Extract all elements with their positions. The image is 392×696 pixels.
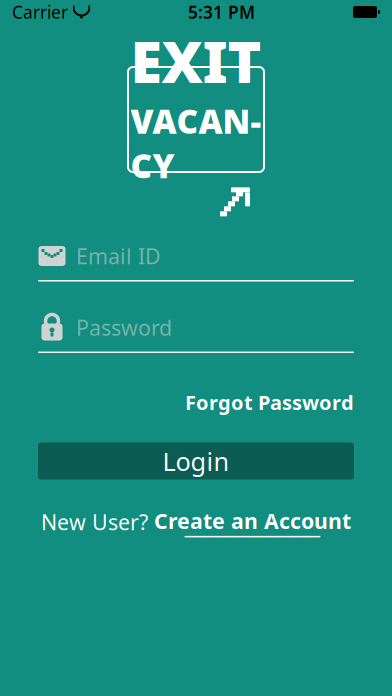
staticText: Forgot Password (185, 389, 354, 416)
staticText: EXIT (130, 23, 261, 99)
button[interactable]: New User? (41, 507, 351, 537)
staticText: 5:31 PM (188, 0, 255, 23)
button[interactable]: Login (38, 443, 354, 480)
button[interactable]: Forgot Password (185, 389, 354, 416)
staticText: Carrier (12, 0, 68, 23)
staticText: Login (162, 444, 229, 478)
staticText: VACANCY (130, 99, 261, 187)
staticText: Create an Account (154, 507, 351, 535)
staticText: New User? (41, 508, 148, 536)
staticText: Password (76, 313, 172, 342)
staticText: Email ID (76, 242, 161, 270)
